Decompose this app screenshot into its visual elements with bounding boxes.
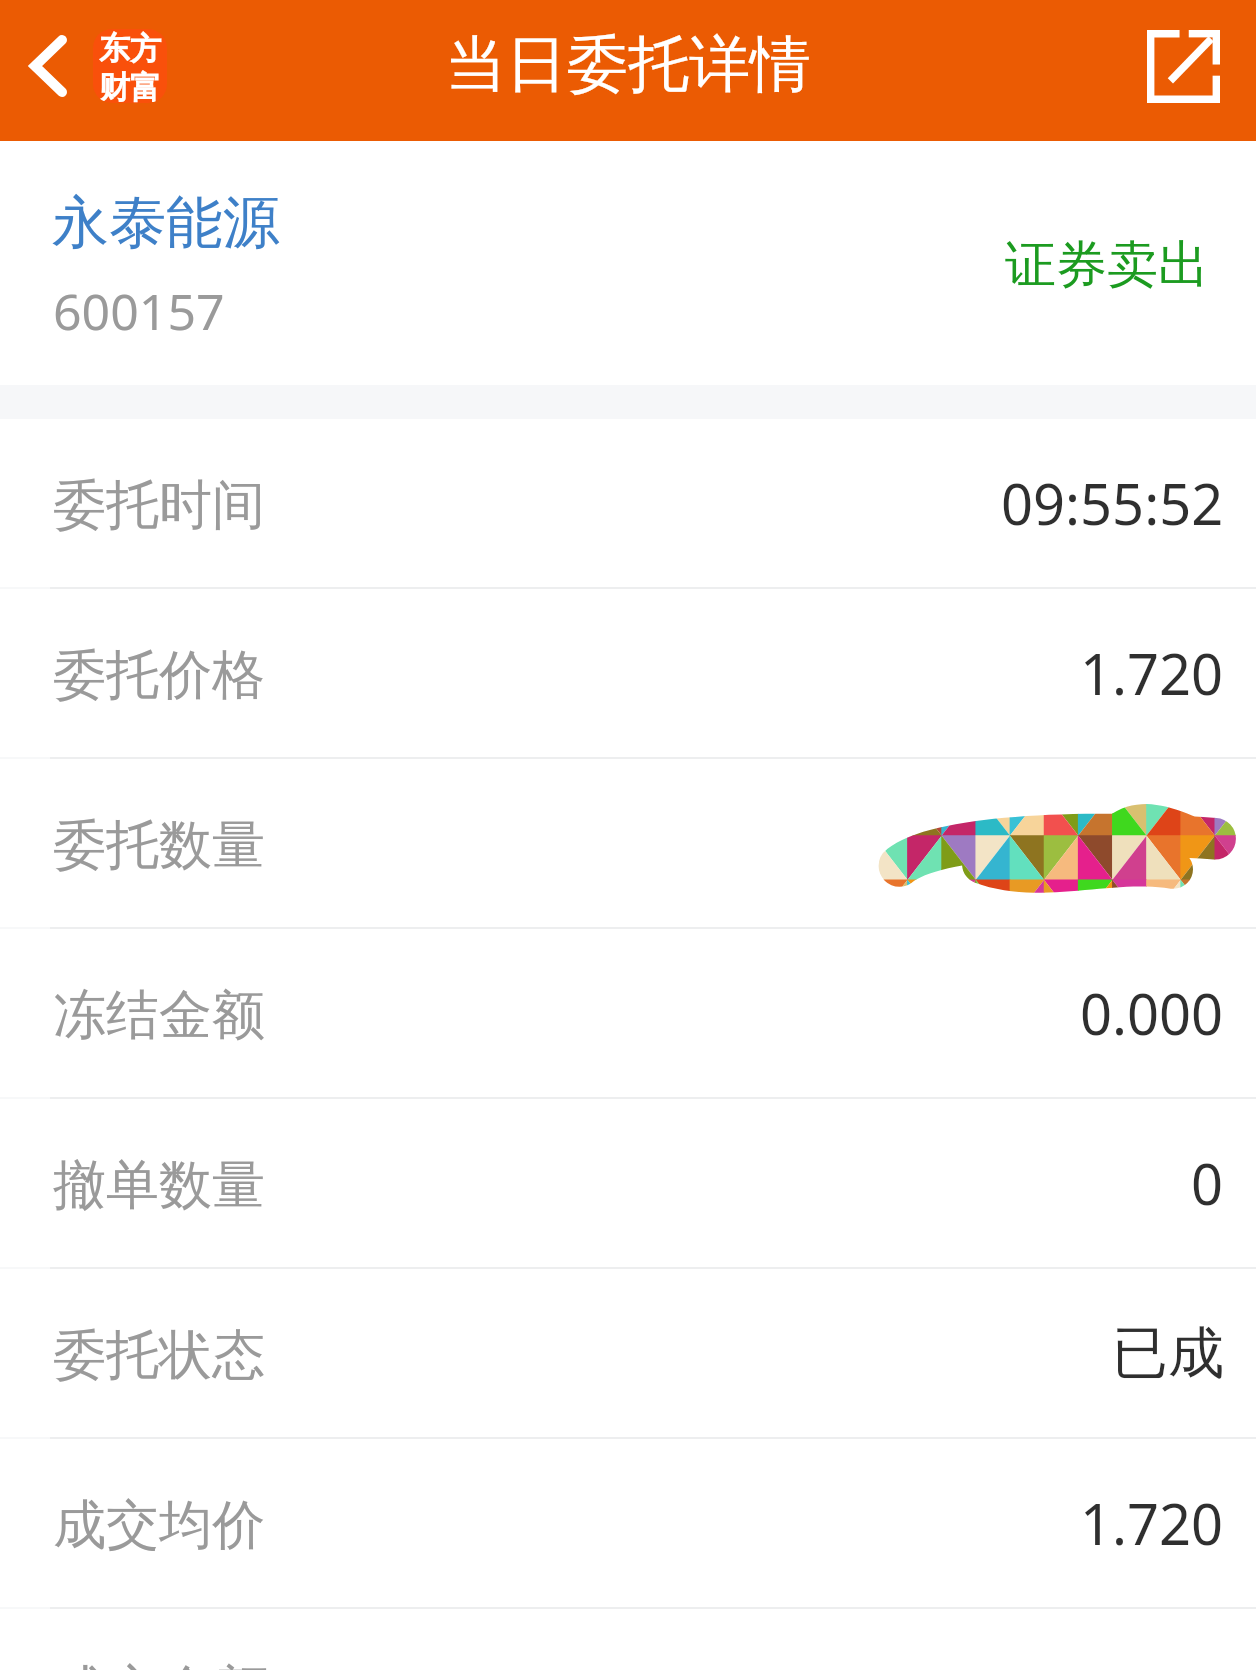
- staticText: 09:55:52: [1001, 465, 1224, 541]
- staticText: 委托状态: [53, 1322, 265, 1389]
- staticText: 600157: [53, 277, 225, 345]
- staticText: 成交金额: [53, 1657, 269, 1670]
- staticText: 0: [1191, 1145, 1224, 1221]
- staticText: 永泰能源: [52, 187, 280, 259]
- staticText: 委托时间: [53, 472, 265, 539]
- staticText: 东方: [99, 29, 161, 68]
- button[interactable]: 委托时间: [0, 419, 1256, 587]
- staticText: 已成: [1112, 1318, 1224, 1389]
- staticText: 1.720: [1080, 1485, 1224, 1561]
- staticText: 当日委托详情: [445, 26, 811, 103]
- button[interactable]: 冻结金额: [0, 929, 1256, 1097]
- button[interactable]: 成交均价: [0, 1439, 1256, 1607]
- button[interactable]: 永泰能源: [0, 141, 1256, 385]
- staticText: 成交均价: [53, 1492, 265, 1559]
- button[interactable]: Share: [1147, 30, 1256, 103]
- staticText: 0.000: [1080, 975, 1224, 1051]
- staticText: 财富: [99, 68, 161, 103]
- staticText: 撤单数量: [53, 1152, 265, 1219]
- staticText: 证券卖出: [1005, 233, 1209, 297]
- button[interactable]: 委托价格: [0, 589, 1256, 757]
- staticText: 1.720: [1080, 635, 1224, 711]
- staticText: 冻结金额: [53, 982, 265, 1049]
- button[interactable]: 委托数量: [0, 759, 1256, 927]
- button[interactable]: 委托状态: [0, 1269, 1256, 1437]
- staticText: 委托数量: [53, 812, 265, 879]
- button[interactable]: 成交金额: [0, 1609, 1256, 1670]
- button[interactable]: Back: [0, 29, 181, 112]
- staticText: 委托价格: [53, 642, 265, 709]
- button[interactable]: 撤单数量: [0, 1099, 1256, 1267]
